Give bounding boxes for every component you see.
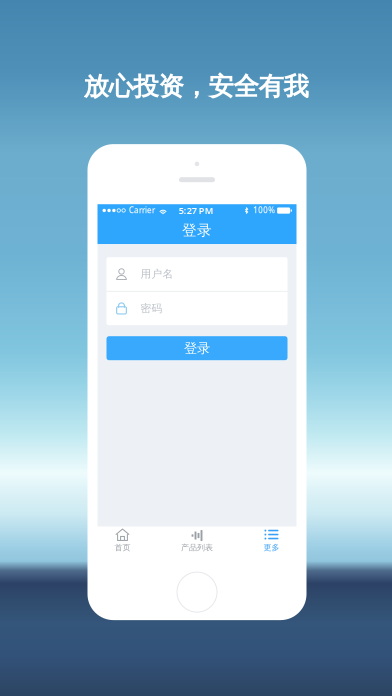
staticText: 5:27 PM — [178, 204, 213, 216]
staticText: 放心投资，安全有我 — [83, 71, 308, 102]
staticText: 用户名 — [140, 267, 173, 281]
button[interactable]: 登录 — [106, 336, 287, 360]
staticText: 更多 — [263, 543, 279, 552]
staticText: 登录 — [182, 221, 212, 239]
staticText: 首页 — [114, 543, 130, 552]
staticText: 登录 — [184, 340, 210, 356]
staticText: Carrier — [129, 205, 155, 216]
staticText: 密码 — [140, 302, 162, 315]
staticText: 产品列表 — [181, 543, 213, 552]
button[interactable]: 产品列表 — [166, 527, 228, 557]
button[interactable]: 首页 — [91, 527, 153, 557]
button[interactable]: 更多 — [240, 527, 302, 557]
staticText: 100% — [253, 205, 275, 216]
